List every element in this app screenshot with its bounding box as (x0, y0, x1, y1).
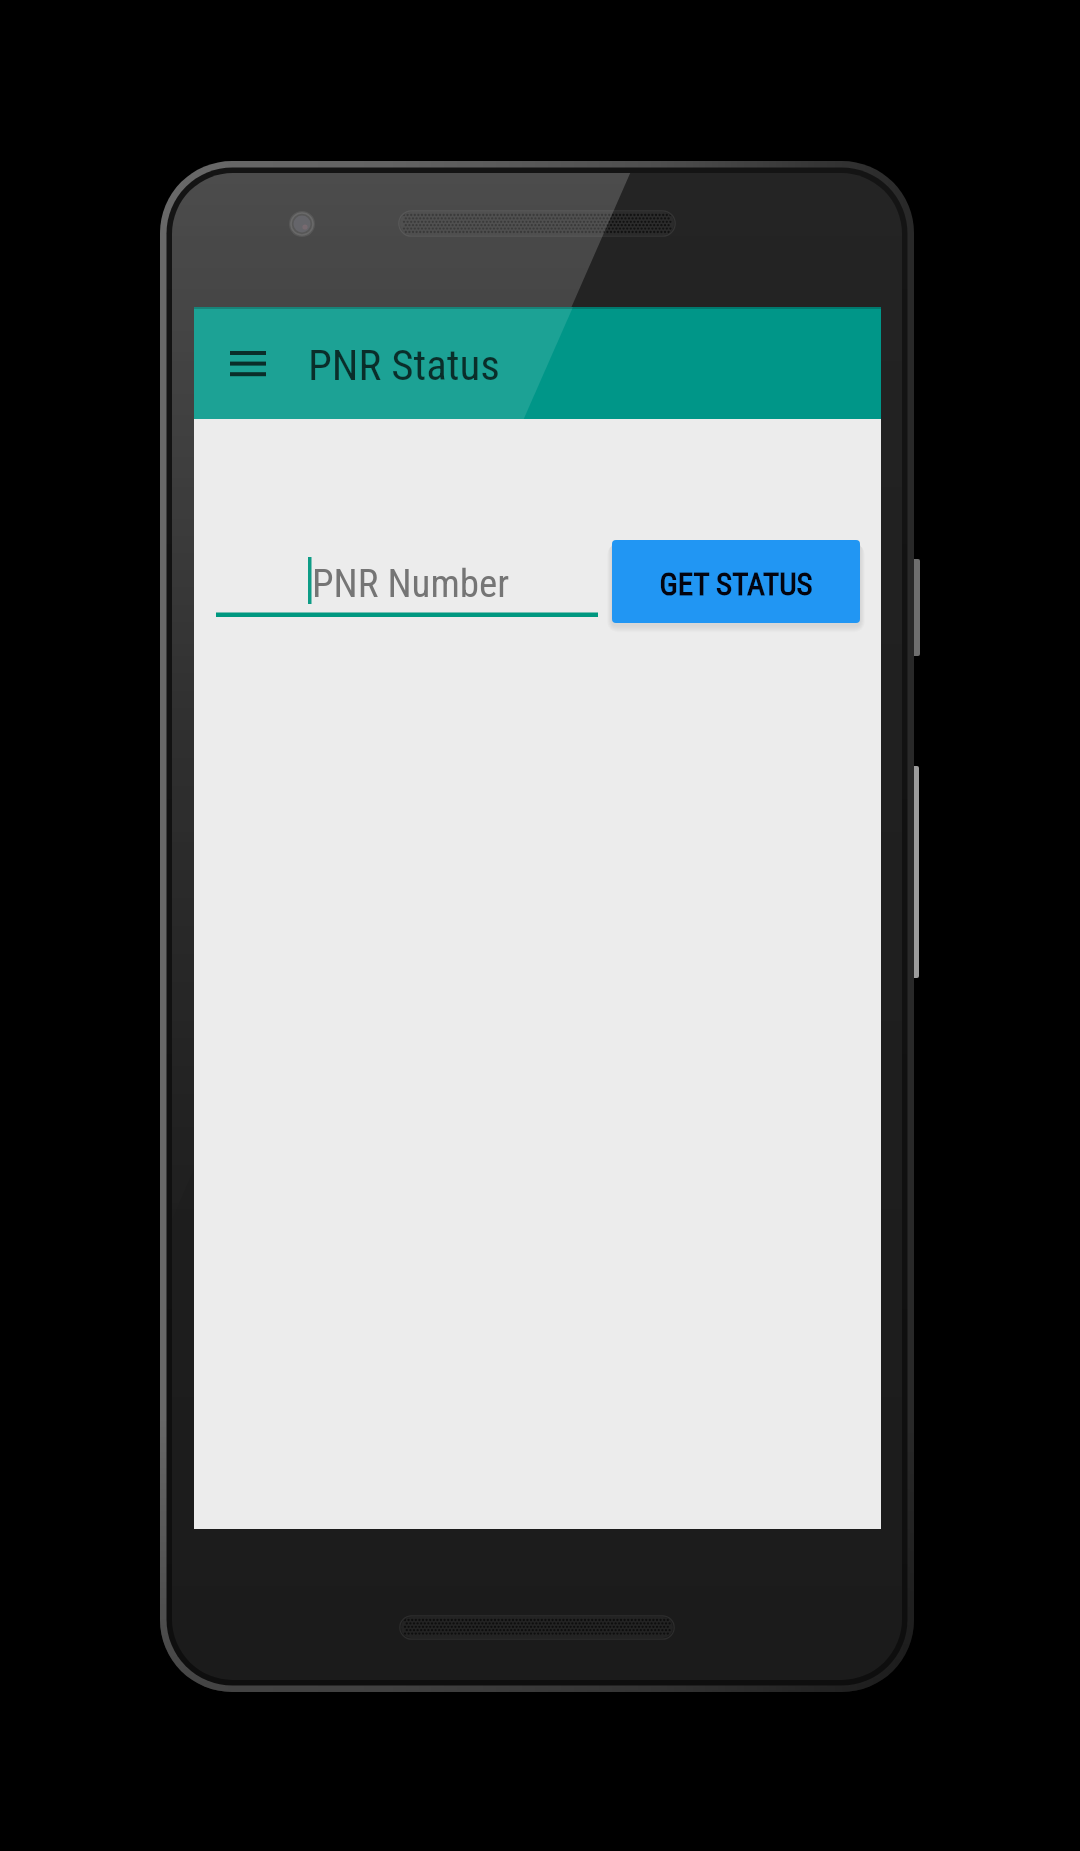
button[interactable]: PNR Number (216, 533, 598, 623)
staticText: GET STATUS (659, 566, 813, 602)
button[interactable]: Open navigation drawer (206, 321, 290, 405)
staticText: PNR Number (312, 561, 510, 607)
button[interactable]: GET STATUS (612, 540, 860, 623)
staticText: PNR Status (308, 340, 500, 390)
